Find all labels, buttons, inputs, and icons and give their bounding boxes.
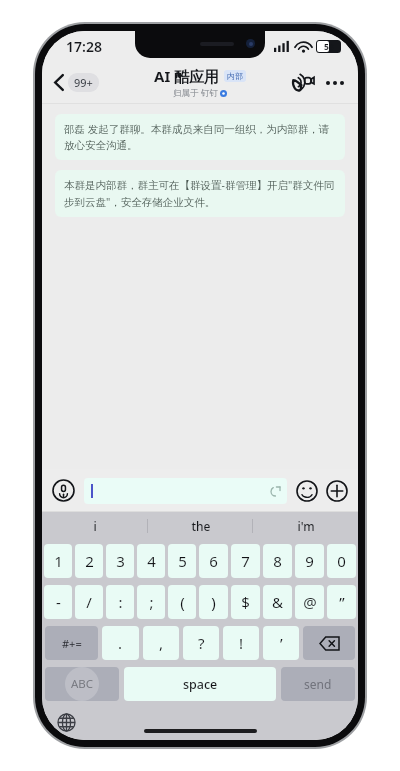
button[interactable]: : (106, 585, 134, 619)
staticText: 4 (147, 551, 156, 571)
button[interactable]: ” (327, 585, 356, 619)
button[interactable]: ! (223, 626, 259, 660)
button[interactable] (84, 478, 287, 504)
button[interactable]: 2 (75, 544, 103, 578)
button[interactable]: 6 (199, 544, 228, 578)
button[interactable]: ABC (45, 667, 119, 701)
staticText: @ (303, 592, 317, 612)
button[interactable]: / (75, 585, 103, 619)
staticText: : (118, 592, 123, 612)
staticText: the (191, 518, 211, 534)
button[interactable]: 邵磊 发起了群聊。本群成员来自同一组织，为内部群，请放心安全沟通。 (55, 114, 345, 160)
button[interactable]: Switch keyboard language (55, 711, 77, 733)
button[interactable]: $ (231, 585, 260, 619)
button[interactable]: i (42, 512, 148, 540)
button[interactable]: 3 (106, 544, 134, 578)
staticText: 8 (273, 551, 282, 571)
staticText: 邵磊 发起了群聊。本群成员来自同一组织，为内部群，请放心安全沟通。 (64, 122, 336, 152)
button[interactable]: 1 (44, 544, 72, 578)
staticText: - (56, 592, 61, 612)
button[interactable]: . (102, 626, 139, 660)
button[interactable]: ? (183, 626, 219, 660)
staticText: i (93, 518, 97, 534)
staticText: ! (239, 633, 244, 653)
staticText: ( (180, 592, 185, 612)
staticText: 99+ (74, 75, 93, 90)
button[interactable]: Back, 99+ unread (50, 70, 103, 95)
staticText: ABC (71, 676, 94, 692)
staticText: 7 (241, 551, 250, 571)
staticText: ’ (280, 633, 283, 653)
button[interactable]: space (124, 667, 276, 701)
button[interactable]: 8 (263, 544, 292, 578)
button[interactable]: send (281, 667, 355, 701)
button[interactable]: AI 酷应用 (154, 66, 246, 99)
staticText: 2 (85, 551, 94, 571)
button[interactable]: #+= (45, 626, 98, 660)
staticText: 3 (116, 551, 125, 571)
staticText: 6 (209, 551, 218, 571)
staticText: 内部 (227, 71, 243, 81)
staticText: 9 (305, 551, 314, 571)
staticText: ; (149, 592, 154, 612)
button[interactable]: ) (199, 585, 228, 619)
staticText: & (272, 592, 283, 612)
staticText: ? (198, 633, 205, 653)
staticText: 17:28 (66, 37, 102, 56)
button[interactable]: the (148, 512, 253, 540)
button[interactable]: ’ (263, 626, 299, 660)
staticText: send (304, 676, 332, 692)
staticText: 本群是内部群，群主可在【群设置-群管理】开启"群文件同步到云盘"，安全存储企业文… (64, 178, 336, 209)
button[interactable]: @ (295, 585, 324, 619)
staticText: ” (339, 592, 345, 612)
button[interactable]: Add attachment (325, 479, 349, 503)
button[interactable]: Emoji (295, 479, 319, 503)
staticText: i'm (297, 518, 315, 534)
button[interactable]: 5 (168, 544, 196, 578)
staticText: AI 酷应用 (154, 66, 220, 86)
button[interactable]: 本群是内部群，群主可在【群设置-群管理】开启"群文件同步到云盘"，安全存储企业文… (55, 170, 345, 217)
staticText: #+= (62, 636, 82, 651)
button[interactable]: Video call (290, 70, 316, 96)
button[interactable]: 0 (327, 544, 356, 578)
staticText: 0 (337, 551, 346, 571)
staticText: 归属于 钉钉 (173, 87, 218, 99)
button[interactable]: Delete (303, 626, 355, 660)
staticText: 5 (178, 551, 187, 571)
button[interactable]: Voice message (51, 478, 76, 503)
button[interactable]: & (263, 585, 292, 619)
button[interactable]: , (143, 626, 179, 660)
staticText: ) (211, 592, 216, 612)
button[interactable]: 4 (137, 544, 165, 578)
staticText: / (86, 592, 92, 612)
staticText: 1 (54, 551, 63, 571)
staticText: $ (241, 592, 250, 612)
button[interactable]: ( (168, 585, 196, 619)
staticText: 53 (324, 41, 334, 53)
button[interactable]: ; (137, 585, 165, 619)
button[interactable]: 7 (231, 544, 260, 578)
staticText: space (183, 676, 218, 693)
button[interactable]: More options (322, 70, 348, 96)
button[interactable]: 9 (295, 544, 324, 578)
staticText: . (118, 633, 123, 653)
staticText: , (159, 633, 164, 653)
button[interactable]: i'm (253, 512, 358, 540)
button[interactable]: - (44, 585, 72, 619)
